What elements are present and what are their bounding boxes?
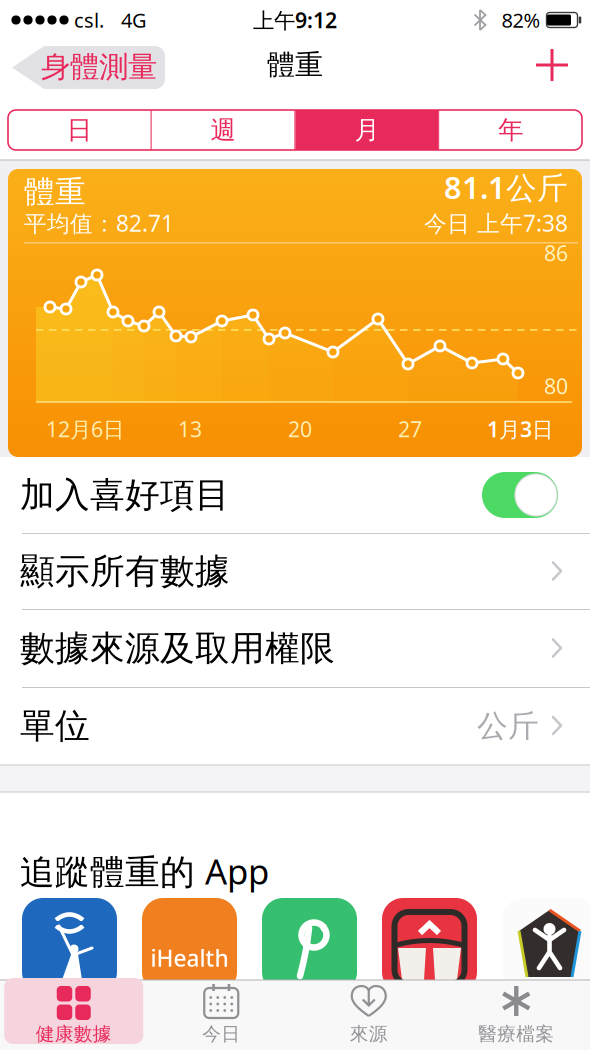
staticText: 數據來源及取用權限 [20,627,335,670]
button[interactable]: 年 [439,110,582,150]
staticText: 80 [544,372,568,400]
button[interactable] [382,898,477,993]
button[interactable] [22,898,117,993]
staticText: 體重 [24,173,86,211]
button[interactable] [262,898,357,993]
button[interactable] [502,898,590,993]
staticText: 4G [121,7,147,33]
button[interactable]: 身體測量 [12,46,165,89]
staticText: 週 [211,114,236,145]
staticText: csl. [74,7,104,33]
staticText: 平均值：82.71 [24,208,174,238]
staticText: 顯示所有數據 [20,550,230,593]
button[interactable]: 單位 [0,688,590,764]
staticText: 年 [498,114,523,145]
button[interactable]: 數據來源及取用權限 [0,610,590,686]
button[interactable]: 月 [296,110,438,150]
staticText: 醫療檔案 [478,1022,554,1045]
staticText: 81.1公斤 [444,167,568,207]
button[interactable]: 顯示所有數據 [0,533,590,609]
staticText: 體重 [267,48,323,82]
staticText: 82% [501,7,540,33]
staticText: 今日 上午7:38 [424,208,568,238]
staticText: 86 [544,239,568,267]
staticText: 來源 [350,1022,388,1045]
staticText: 追蹤體重的 App [20,848,269,894]
button[interactable] [536,49,568,81]
staticText: 今日 [202,1022,240,1045]
staticText: 上午9:12 [253,6,337,34]
staticText: 加入喜好項目 [20,474,230,516]
button[interactable]: 健康數據 [0,979,147,1049]
staticText: 公斤 [477,707,539,745]
button[interactable]: 醫療檔案 [442,979,590,1049]
staticText: 月 [354,114,379,145]
button[interactable] [482,472,558,518]
button[interactable]: 來源 [295,979,442,1049]
staticText: 健康數據 [36,1022,112,1045]
button[interactable]: 週 [152,110,294,150]
staticText: 日 [67,114,92,145]
staticText: 身體測量 [41,49,157,85]
button[interactable]: iHealth [142,898,237,993]
staticText: 12月6日 [46,415,124,443]
staticText: 27 [398,415,422,443]
staticText: 20 [288,415,312,443]
button[interactable]: 今日 [147,979,295,1049]
staticText: iHealth [150,943,228,973]
staticText: 13 [178,415,202,443]
button[interactable]: 日 [8,110,151,150]
staticText: 單位 [20,705,90,747]
staticText: 1月3日 [487,415,553,443]
